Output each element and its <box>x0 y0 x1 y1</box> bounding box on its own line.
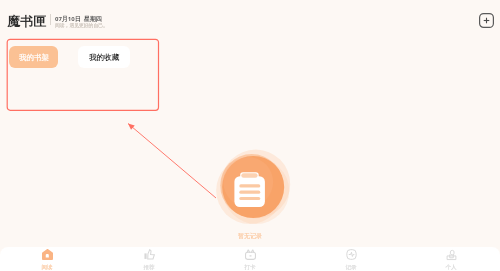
button[interactable]: 打卡 <box>228 247 272 271</box>
staticText: 记录 <box>345 264 357 271</box>
button[interactable]: 个人 <box>429 247 473 271</box>
staticText: 阅读，遇见更好的自己。 <box>55 22 108 28</box>
button[interactable]: 记录 <box>329 247 373 271</box>
button[interactable]: Add <box>479 13 494 28</box>
staticText: 魔书匣 <box>7 13 46 29</box>
button[interactable]: 我的书架 <box>9 46 58 68</box>
button[interactable]: 我的收藏 <box>78 46 130 68</box>
button[interactable]: 阅读 <box>25 247 69 271</box>
staticText: 暂无记录 <box>0 232 500 240</box>
staticText: 阅读 <box>41 264 53 271</box>
button[interactable]: 推荐 <box>127 247 171 271</box>
staticText: 打卡 <box>244 264 256 271</box>
staticText: 我的书架 <box>19 53 49 62</box>
staticText: 07月10日 星期四 <box>55 15 102 23</box>
staticText: 推荐 <box>143 264 155 271</box>
staticText: 个人 <box>445 264 457 271</box>
staticText: 我的收藏 <box>89 53 119 62</box>
